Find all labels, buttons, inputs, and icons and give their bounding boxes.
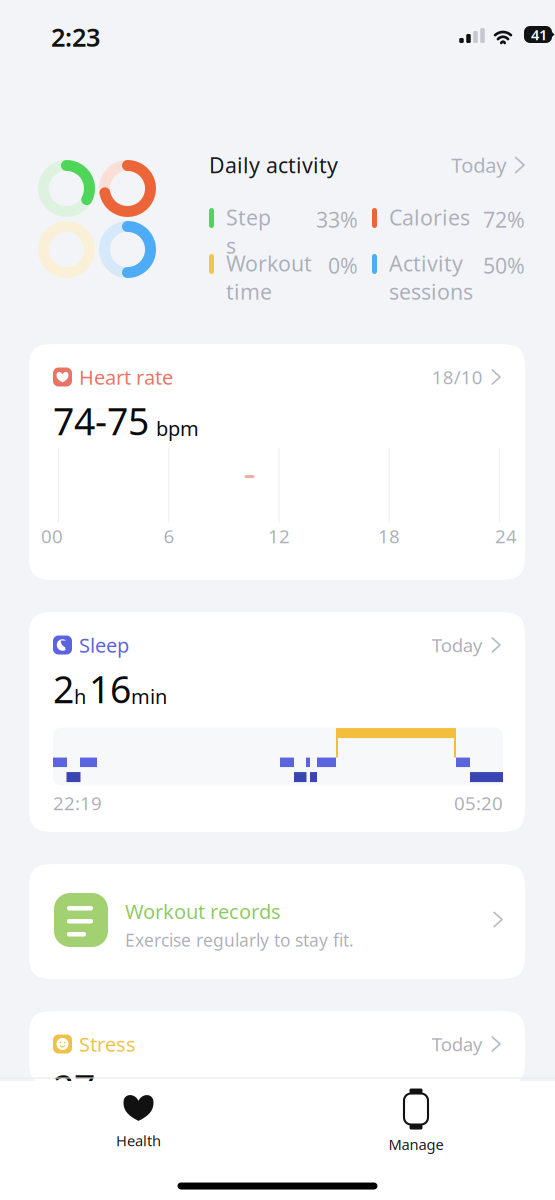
button[interactable]: Daily activity [209,150,525,180]
staticText: Workout time [226,249,312,306]
staticText: Workout records [125,898,281,925]
staticText: 6 [163,524,174,548]
staticText: 16 [89,664,131,714]
staticText: 22:19 [53,791,102,815]
button[interactable]: Manage [277,1078,555,1174]
staticText: Calories [389,203,470,231]
button[interactable]: Stress [53,1034,501,1054]
staticText: Manage [388,1134,443,1154]
staticText: 50% [483,251,525,280]
staticText: 72% [483,205,525,234]
staticText: Stress [79,1031,136,1057]
staticText: 27 [53,1063,95,1113]
staticText: Daily activity [209,151,338,179]
staticText: 18 [378,524,400,548]
staticText: Exercise regularly to stay fit. [125,929,354,952]
staticText: 74-75 [53,396,149,446]
staticText: 2 [53,664,74,714]
staticText: 24 [495,524,517,548]
staticText: 12 [268,524,290,548]
staticText: 41 [531,25,547,44]
button[interactable]: Workout records [29,864,525,979]
staticText: Health [116,1131,161,1150]
staticText: h [74,683,86,710]
staticText: 0% [328,251,358,280]
button[interactable]: Health [0,1078,277,1174]
staticText: 00 [41,524,63,548]
button[interactable]: Heart rate [53,367,501,387]
staticText: Today [451,152,506,178]
staticText: min [131,683,167,710]
staticText: 2:23 [51,20,100,54]
staticText: bpm [156,415,199,442]
staticText: 33% [316,205,358,234]
staticText: Sleep [79,632,129,658]
staticText: Activity sessions [389,249,473,306]
staticText: 05:20 [454,791,503,815]
button[interactable]: Sleep [53,635,501,655]
staticText: Step s [226,203,271,260]
staticText: 18/10 [432,365,483,389]
staticText: Today [432,633,483,657]
staticText: Heart rate [79,364,173,390]
staticText: Today [432,1032,483,1056]
